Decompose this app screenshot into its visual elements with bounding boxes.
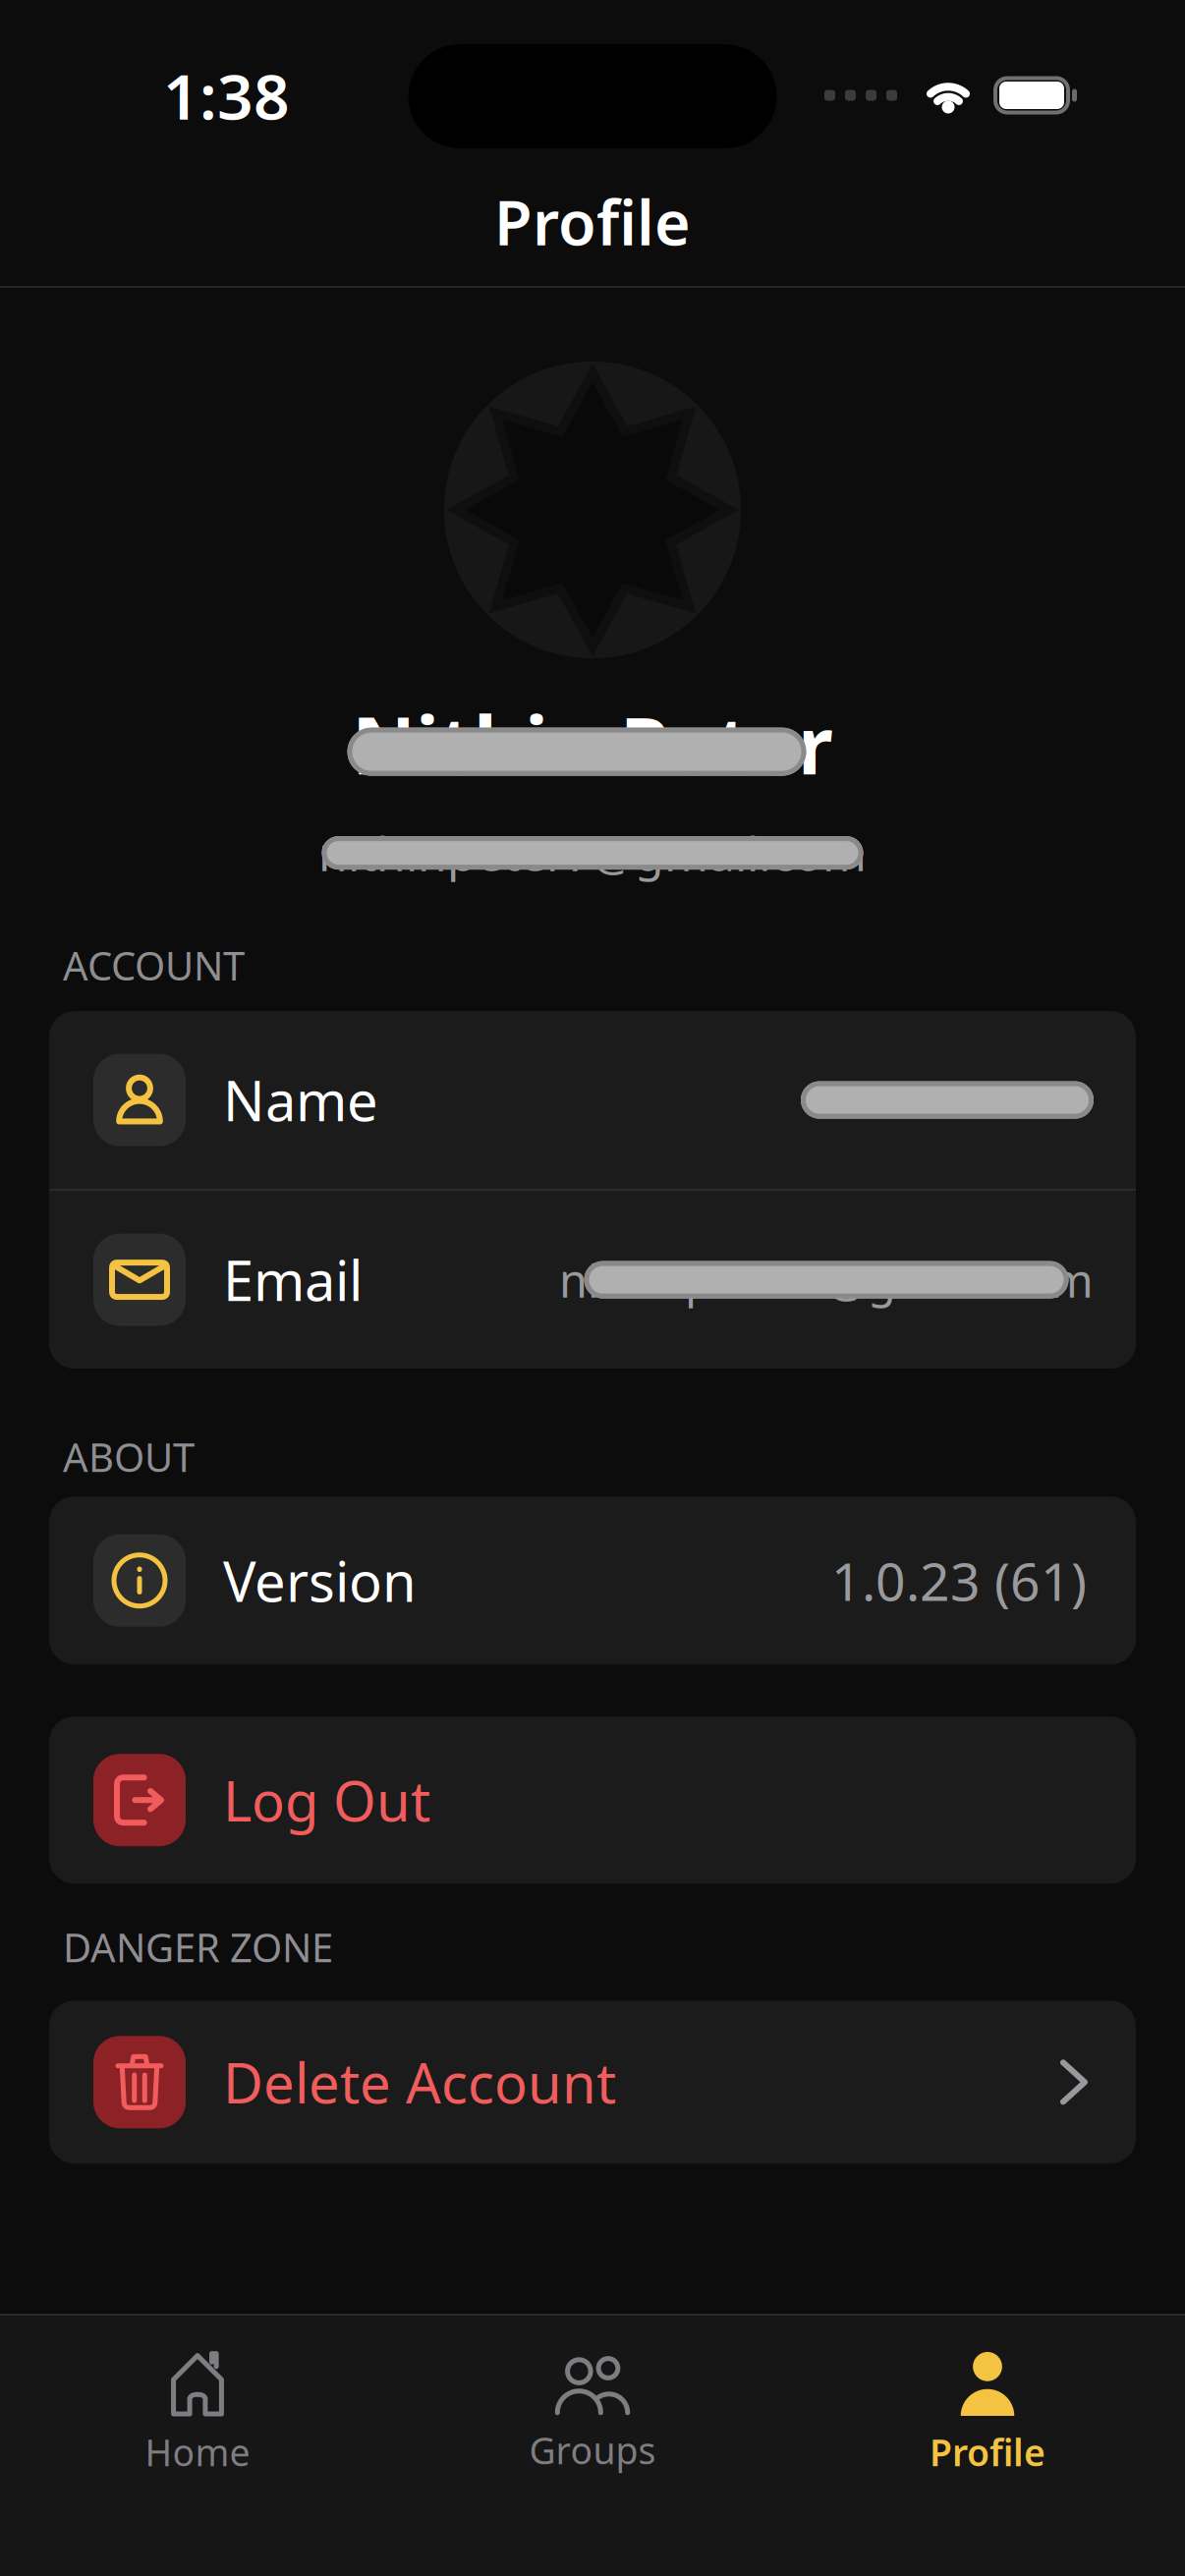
- staticText: Home: [145, 2428, 250, 2476]
- staticText: nithinpeter7@gmail.com: [318, 822, 867, 884]
- button[interactable]: Profile: [790, 2351, 1185, 2476]
- staticText: DANGER ZONE: [63, 1921, 333, 1973]
- staticText: nithinpeter7@gmail.com: [559, 1249, 1094, 1310]
- staticText: Profile: [494, 181, 691, 262]
- staticText: Nithin Peter: [352, 692, 833, 796]
- staticText: 1.0.23 (61): [831, 1546, 1087, 1615]
- staticText: 1:38: [163, 54, 290, 137]
- button[interactable]: Delete Account: [49, 2001, 1136, 2164]
- staticText: Profile: [930, 2428, 1045, 2476]
- staticText: Delete Account: [223, 2046, 616, 2119]
- button[interactable]: Home: [0, 2351, 395, 2476]
- staticText: Name: [223, 1063, 378, 1137]
- staticText: Email: [223, 1243, 363, 1316]
- staticText: Log Out: [223, 1764, 430, 1837]
- staticText: Groups: [529, 2426, 656, 2474]
- staticText: Version: [223, 1544, 417, 1617]
- staticText: ACCOUNT: [63, 939, 245, 991]
- button[interactable]: Groups: [395, 2353, 790, 2474]
- staticText: ABOUT: [63, 1431, 195, 1483]
- button[interactable]: Log Out: [49, 1717, 1136, 1884]
